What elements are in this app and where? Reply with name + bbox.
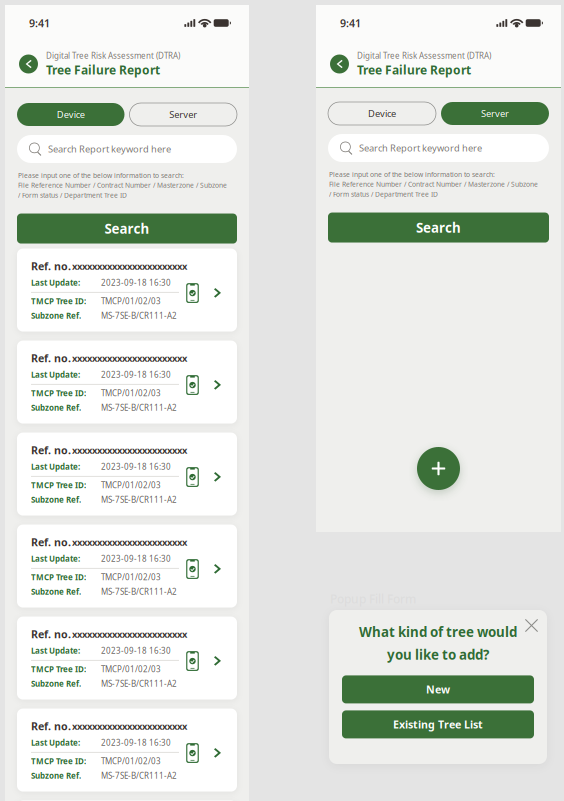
staticText: Tree Failure Report: [357, 62, 471, 78]
staticText: 2023-09-18 16:30: [101, 553, 171, 564]
button[interactable]: Add report: [417, 447, 460, 490]
staticText: TMCP Tree ID:: [31, 296, 86, 306]
staticText: Subzone Ref.: [31, 586, 81, 597]
staticText: Subzone Ref.: [31, 678, 81, 689]
staticText: 2023-09-18 16:30: [101, 737, 171, 748]
button[interactable]: Ref. no.: [17, 617, 237, 700]
staticText: TMCP/01/02/03: [101, 664, 161, 674]
staticText: xxxxxxxxxxxxxxxxxxxxxxx: [72, 536, 187, 548]
staticText: Search Report keyword here: [359, 142, 482, 154]
staticText: Please input one of the below informatio…: [18, 171, 184, 180]
button[interactable]: Ref. no.: [17, 433, 237, 516]
staticText: Last Update:: [31, 737, 80, 748]
staticText: Last Update:: [31, 553, 80, 564]
staticText: Server: [481, 107, 509, 120]
staticText: File Reference Number / Contract Number …: [329, 180, 538, 189]
staticText: 2023-09-18 16:30: [101, 645, 171, 656]
button[interactable]: Search Report keyword here: [328, 134, 549, 162]
staticText: / Form status / Department Tree ID: [18, 191, 127, 200]
staticText: New: [426, 682, 450, 696]
staticText: xxxxxxxxxxxxxxxxxxxxxxx: [72, 628, 187, 640]
button[interactable]: Search: [328, 213, 549, 243]
staticText: MS-7SE-B/CR111-A2: [101, 402, 177, 413]
staticText: Search: [416, 219, 461, 236]
staticText: Digital Tree Risk Assessment (DTRA): [357, 50, 491, 61]
staticText: Last Update:: [31, 461, 80, 472]
staticText: Ref. no.: [31, 259, 71, 273]
staticText: you like to add?: [387, 646, 489, 663]
button[interactable]: New: [342, 675, 534, 703]
staticText: Please input one of the below informatio…: [329, 170, 495, 179]
staticText: TMCP/01/02/03: [101, 296, 161, 306]
button[interactable]: Device: [17, 103, 124, 126]
staticText: What kind of tree would: [359, 623, 517, 641]
staticText: Ref. no.: [31, 443, 71, 457]
staticText: File Reference Number / Contract Number …: [18, 181, 227, 190]
staticText: Search: [104, 220, 149, 237]
staticText: Ref. no.: [31, 627, 71, 641]
staticText: Subzone Ref.: [31, 770, 81, 781]
staticText: Search Report keyword here: [48, 143, 171, 155]
staticText: MS-7SE-B/CR111-A2: [101, 678, 177, 689]
staticText: Tree Failure Report: [46, 62, 160, 78]
staticText: Ref. no.: [31, 351, 71, 365]
staticText: MS-7SE-B/CR111-A2: [101, 310, 177, 321]
staticText: 9:41: [340, 16, 361, 30]
staticText: MS-7SE-B/CR111-A2: [101, 770, 177, 781]
staticText: TMCP/01/02/03: [101, 572, 161, 582]
staticText: 2023-09-18 16:30: [101, 369, 171, 380]
staticText: MS-7SE-B/CR111-A2: [101, 494, 177, 505]
staticText: Digital Tree Risk Assessment (DTRA): [46, 50, 180, 61]
button[interactable]: Ref. no.: [17, 341, 237, 424]
staticText: / Form status / Department Tree ID: [329, 190, 438, 199]
button[interactable]: Close: [519, 613, 544, 638]
staticText: Ref. no.: [31, 719, 71, 733]
staticText: Server: [169, 108, 197, 121]
staticText: Last Update:: [31, 645, 80, 656]
staticText: MS-7SE-B/CR111-A2: [101, 586, 177, 597]
staticText: TMCP Tree ID:: [31, 572, 86, 582]
staticText: TMCP Tree ID:: [31, 480, 86, 490]
button[interactable]: Ref. no.: [17, 249, 237, 332]
button[interactable]: Search: [17, 214, 237, 244]
staticText: Device: [368, 107, 396, 120]
staticText: Subzone Ref.: [31, 402, 81, 413]
button[interactable]: Back: [330, 54, 349, 73]
button[interactable]: Ref. no.: [17, 525, 237, 608]
staticText: xxxxxxxxxxxxxxxxxxxxxxx: [72, 352, 187, 364]
staticText: xxxxxxxxxxxxxxxxxxxxxxx: [72, 720, 187, 732]
staticText: xxxxxxxxxxxxxxxxxxxxxxx: [72, 260, 187, 272]
staticText: Last Update:: [31, 369, 80, 380]
staticText: Last Update:: [31, 277, 80, 288]
button[interactable]: Server: [129, 103, 237, 126]
button[interactable]: Server: [441, 102, 549, 125]
staticText: 2023-09-18 16:30: [101, 277, 171, 288]
staticText: TMCP/01/02/03: [101, 480, 161, 490]
button[interactable]: Back: [19, 54, 38, 73]
button[interactable]: Device: [328, 102, 436, 125]
button[interactable]: Ref. no.: [17, 709, 237, 792]
staticText: TMCP Tree ID:: [31, 388, 86, 398]
staticText: TMCP/01/02/03: [101, 756, 161, 766]
button[interactable]: Search Report keyword here: [17, 135, 237, 163]
staticText: TMCP Tree ID:: [31, 664, 86, 674]
staticText: TMCP Tree ID:: [31, 756, 86, 766]
staticText: Subzone Ref.: [31, 310, 81, 321]
staticText: 2023-09-18 16:30: [101, 461, 171, 472]
staticText: Subzone Ref.: [31, 494, 81, 505]
staticText: xxxxxxxxxxxxxxxxxxxxxxx: [72, 444, 187, 456]
button[interactable]: Existing Tree List: [342, 710, 534, 738]
staticText: 9:41: [29, 16, 50, 30]
staticText: TMCP/01/02/03: [101, 388, 161, 398]
staticText: Ref. no.: [31, 535, 71, 549]
staticText: Existing Tree List: [393, 717, 483, 731]
staticText: Device: [57, 108, 85, 121]
